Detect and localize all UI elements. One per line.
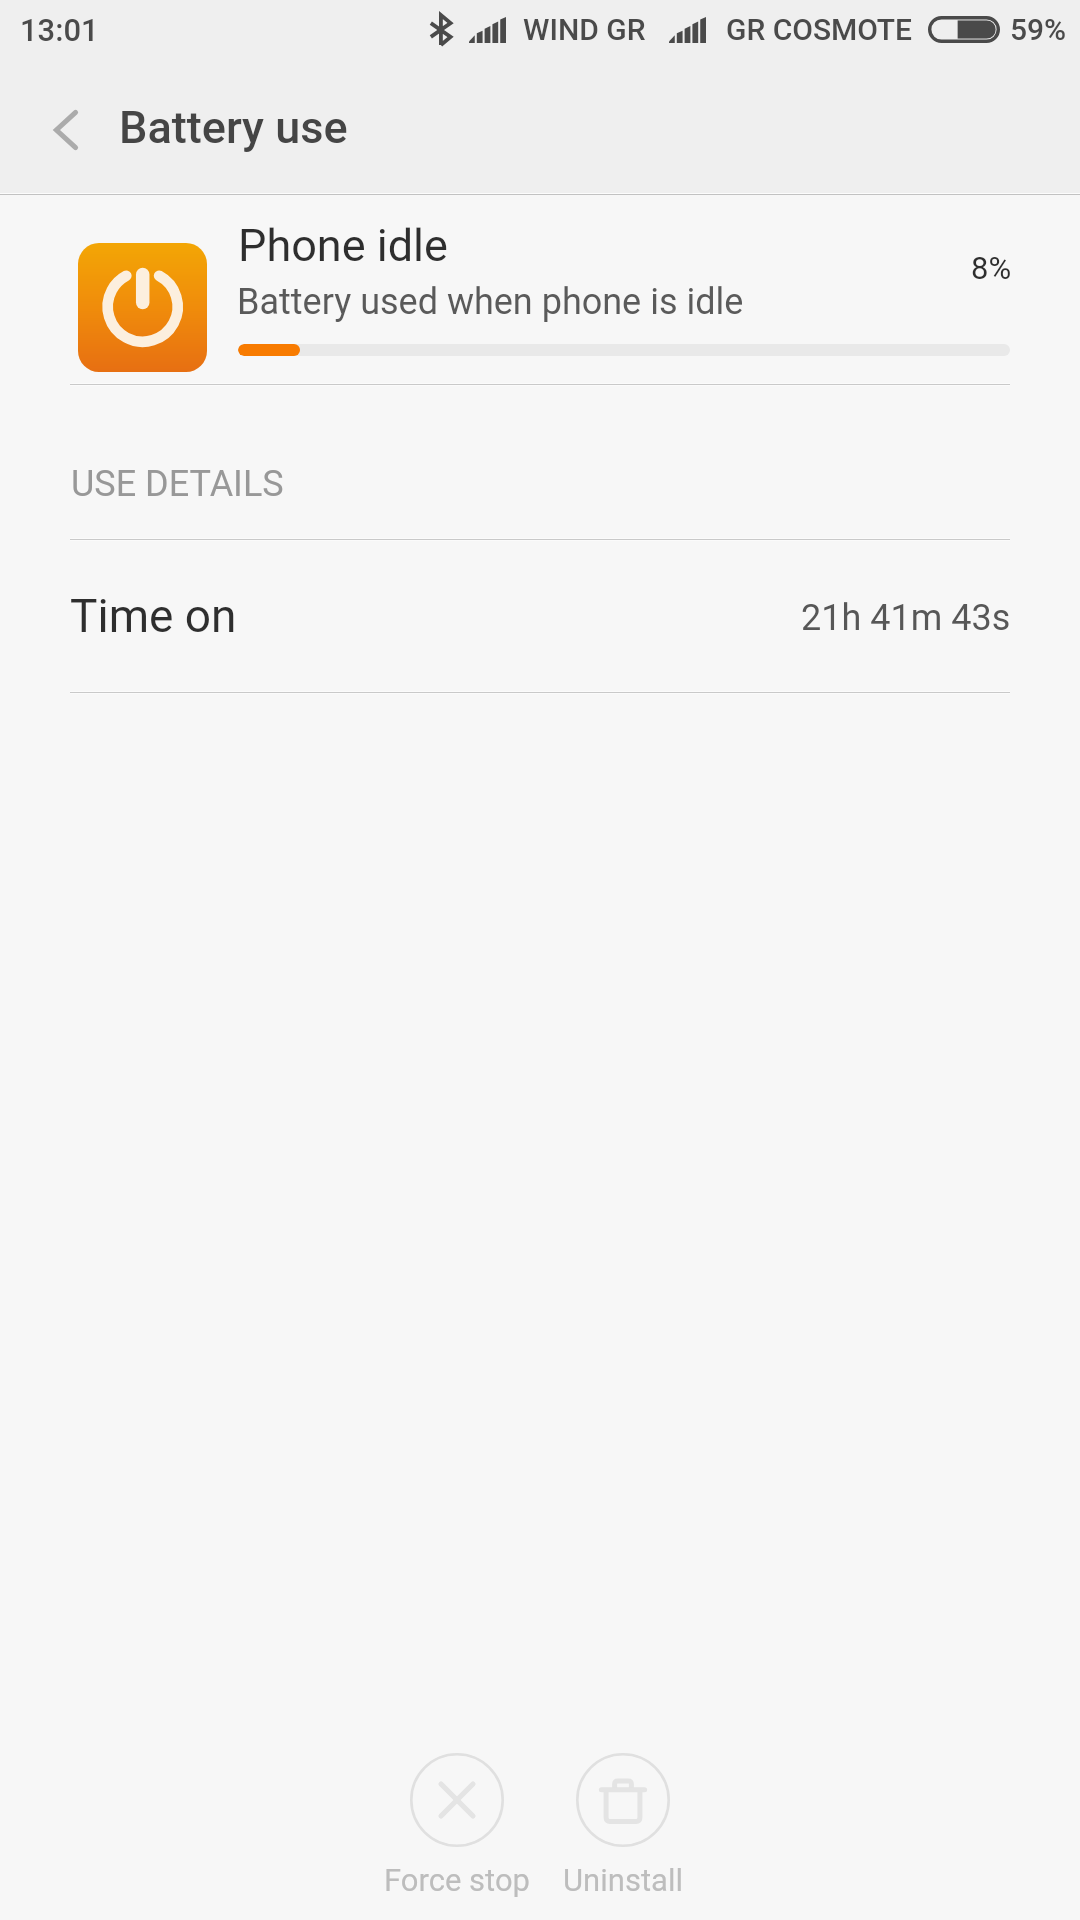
staticText: Battery used when phone is idle <box>237 281 744 323</box>
staticText: 13:01 <box>20 12 99 48</box>
staticText: 59% <box>1010 12 1067 47</box>
button[interactable]: Uninstall <box>528 1746 718 1906</box>
staticText: Phone idle <box>238 219 448 272</box>
staticText: USE DETAILS <box>71 463 284 505</box>
button[interactable]: Force stop <box>362 1746 552 1906</box>
button[interactable]: Back <box>26 90 106 170</box>
staticText: 8% <box>971 250 1012 286</box>
staticText: 21h 41m 43s <box>801 597 1011 639</box>
staticText: WIND GR <box>523 12 646 47</box>
button[interactable]: Phone idle <box>0 195 1080 384</box>
staticText: Force stop <box>384 1862 530 1898</box>
staticText: Time on <box>70 589 237 643</box>
button[interactable]: Time on <box>0 540 1080 692</box>
staticText: GR COSMOTE <box>726 12 912 47</box>
staticText: Uninstall <box>563 1862 683 1898</box>
staticText: Battery use <box>119 101 348 154</box>
